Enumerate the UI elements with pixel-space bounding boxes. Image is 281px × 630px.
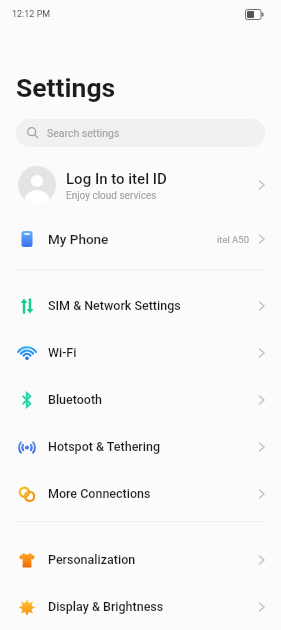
staticText: SIM & Network Settings xyxy=(48,298,181,313)
staticText: Display & Brightness xyxy=(48,599,164,614)
staticText: Personalization xyxy=(48,552,136,567)
staticText: Settings xyxy=(16,72,116,103)
button[interactable]: My Phone xyxy=(0,214,281,264)
staticText: My Phone xyxy=(48,231,109,247)
staticText: Log In to itel ID xyxy=(66,170,167,188)
button[interactable]: Hotspot & Tethering xyxy=(0,423,281,470)
button[interactable]: More Connections xyxy=(0,470,281,517)
staticText: 12:12 PM xyxy=(12,9,51,20)
button[interactable]: Bluetooth xyxy=(0,376,281,423)
button[interactable]: Log In to itel ID xyxy=(0,160,281,210)
button[interactable]: Search settings xyxy=(16,119,265,147)
staticText: Enjoy cloud services xyxy=(66,190,157,202)
button[interactable]: Display & Brightness xyxy=(0,583,281,630)
staticText: Bluetooth xyxy=(48,392,103,407)
button[interactable]: SIM & Network Settings xyxy=(0,282,281,329)
staticText: itel A50 xyxy=(217,234,249,245)
staticText: Search settings xyxy=(47,127,120,139)
staticText: More Connections xyxy=(48,486,151,501)
button[interactable]: Personalization xyxy=(0,536,281,583)
staticText: Hotspot & Tethering xyxy=(48,439,160,454)
button[interactable]: Wi-Fi xyxy=(0,329,281,376)
staticText: Wi-Fi xyxy=(48,345,77,360)
